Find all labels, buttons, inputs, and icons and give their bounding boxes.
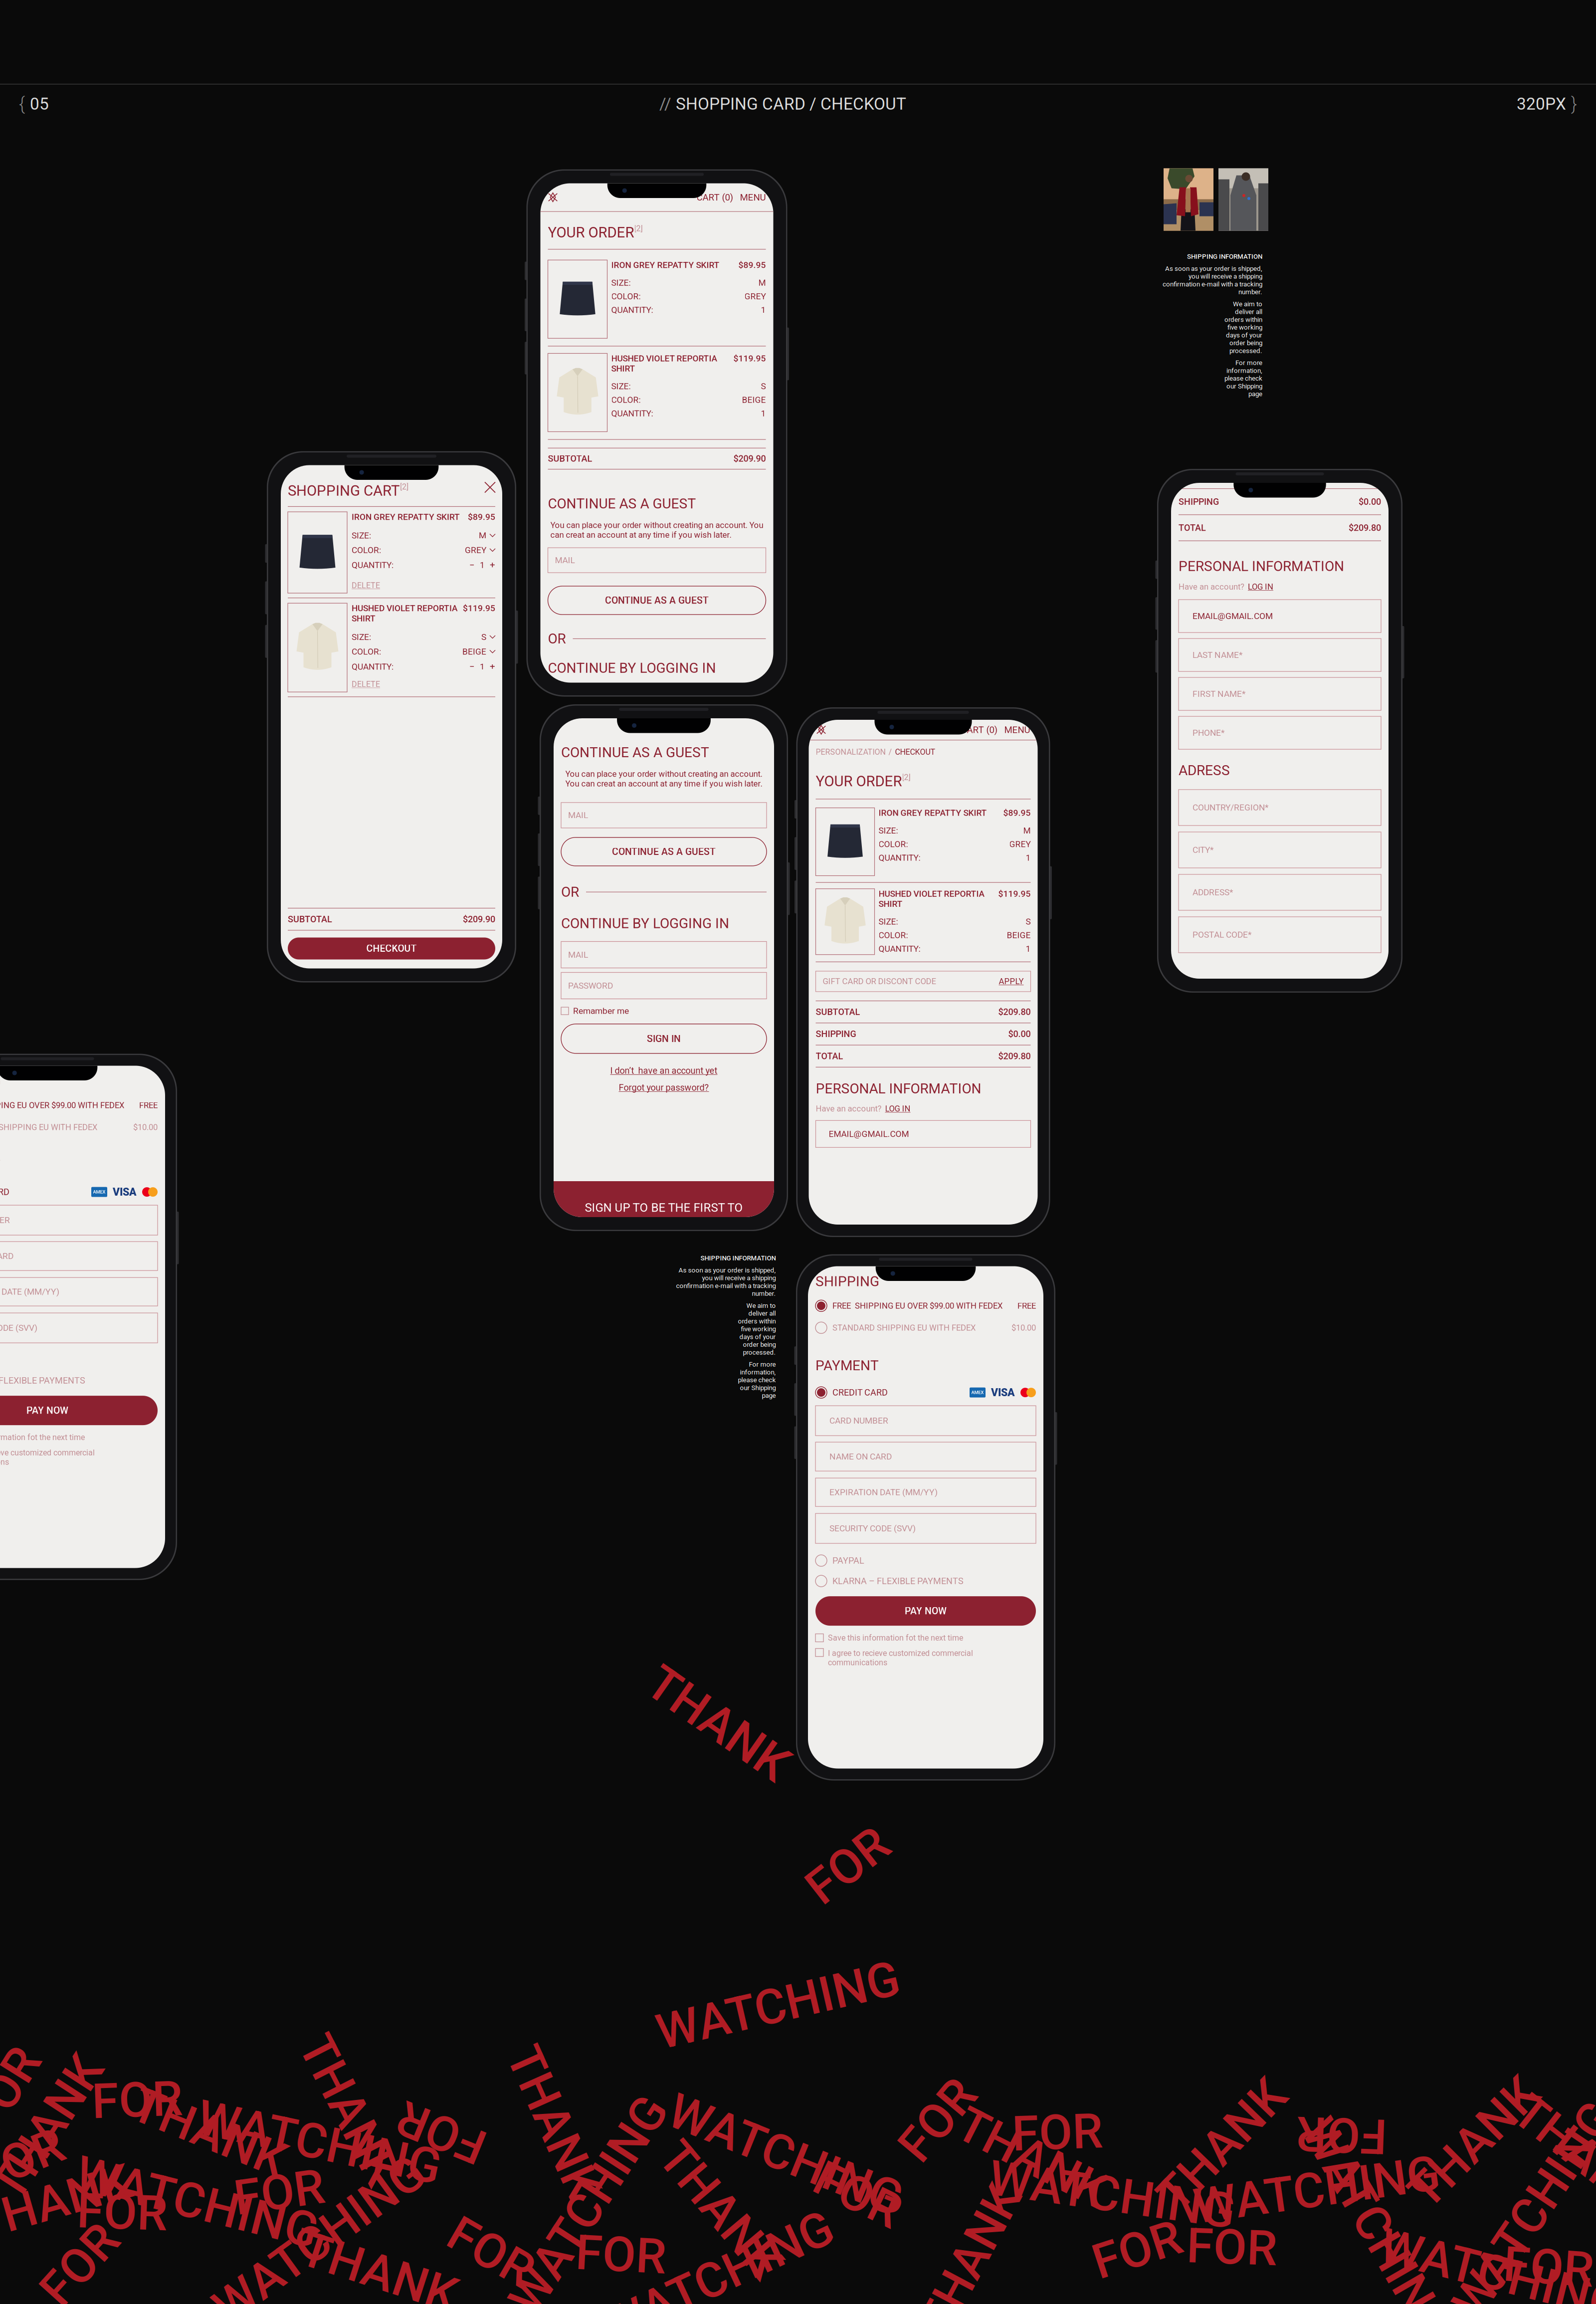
button[interactable]: FREE SHIPPING EU OVER $99.00 WITH FEDEX <box>0 1100 158 1111</box>
staticText: CREDIT CARD <box>832 1387 888 1398</box>
staticText: HUSHED VIOLET REPORTIA SHIRT <box>611 353 717 374</box>
button[interactable]: CART (0) <box>961 724 997 735</box>
staticText: THANK <box>637 1695 799 1752</box>
button[interactable]: CREDIT CARD <box>815 1386 1036 1399</box>
staticText: [2] <box>634 224 643 233</box>
button[interactable]: CONTINUE AS A GUEST <box>548 586 766 615</box>
staticText: } <box>1571 93 1577 114</box>
button[interactable]: Home <box>816 725 826 735</box>
staticText: I agree to recieve customized commercial… <box>0 1448 95 1467</box>
staticText: APPLY <box>999 977 1024 986</box>
staticText: FREE SHIPPING EU OVER $99.00 WITH FEDEX <box>0 1100 124 1110</box>
staticText: 1 <box>480 662 485 672</box>
staticText: Have an account? <box>1179 582 1244 592</box>
staticText: FOR <box>576 2226 666 2283</box>
button[interactable]: Close <box>485 482 495 493</box>
staticText: FREE <box>1017 1301 1036 1311</box>
staticText: COLOR: <box>879 930 908 940</box>
staticText: M <box>1023 825 1031 836</box>
staticText: STANDARD SHIPPING EU WITH FEDEX <box>0 1122 97 1132</box>
staticText: SHIPPING <box>1179 496 1219 507</box>
staticText: THANK <box>0 2174 133 2231</box>
button[interactable]: STANDARD SHIPPING EU WITH FEDEX <box>0 1121 158 1133</box>
button[interactable]: DELETE <box>352 680 495 689</box>
staticText: WATCHING <box>73 2174 321 2231</box>
button[interactable]: I agree to recieve customized commercial… <box>815 1649 1036 1667</box>
staticText: FOR <box>802 1837 893 1894</box>
button[interactable]: CART (0) <box>697 192 733 203</box>
staticText: FOR <box>396 2104 487 2161</box>
button[interactable]: Home <box>548 192 558 202</box>
button[interactable]: PAY NOW <box>815 1596 1036 1626</box>
button[interactable]: MENU <box>997 724 1030 735</box>
staticText: 1 <box>761 305 766 315</box>
staticText: FOR <box>1092 2221 1183 2278</box>
staticText: $209.80 <box>998 1051 1031 1061</box>
button[interactable]: CHECKOUT <box>288 938 495 959</box>
staticText: OR <box>548 630 566 647</box>
button[interactable]: SIGN IN <box>561 1024 767 1053</box>
staticText: + <box>490 560 495 571</box>
staticText: SIGN UP TO BE THE FIRST TO <box>585 1201 743 1215</box>
button[interactable]: MENU <box>733 192 766 203</box>
button[interactable]: SIZE: <box>352 632 495 642</box>
button[interactable]: APPLY <box>999 977 1024 986</box>
button[interactable]: FREE SHIPPING EU OVER $99.00 WITH FEDEX <box>815 1300 1036 1312</box>
staticText: FOR <box>1012 2104 1103 2161</box>
button[interactable]: I agree to recieve customized commercial… <box>0 1448 158 1467</box>
staticText: 320PX <box>1517 94 1566 114</box>
staticText: PERSONALIZATION <box>816 747 886 757</box>
staticText: WATCHING <box>1410 2181 1596 2238</box>
staticText: THANK <box>1393 2114 1555 2171</box>
button[interactable]: Save this information fot the next time <box>815 1633 1036 1643</box>
button[interactable]: Decrease quantity <box>469 661 475 672</box>
button[interactable]: CONTINUE AS A GUEST <box>561 837 767 866</box>
button[interactable]: PAY NOW <box>0 1396 158 1425</box>
staticText: AMEX <box>93 1189 105 1195</box>
button[interactable]: STANDARD SHIPPING EU WITH FEDEX <box>815 1322 1036 1333</box>
button[interactable]: Decrease quantity <box>469 560 475 571</box>
button[interactable]: KLARNA – FLEXIBLE PAYMENTS <box>0 1375 158 1386</box>
staticText: S <box>761 381 766 391</box>
staticText: // <box>659 94 671 114</box>
staticText: SHOPPING CARD / CHECKOUT <box>676 94 906 114</box>
staticText: GREY <box>1009 839 1031 849</box>
button[interactable]: PAYPAL <box>815 1555 1036 1566</box>
staticText: PHONE* <box>1193 728 1224 738</box>
staticText: SIGN IN <box>647 1033 681 1044</box>
button[interactable]: COLOR: <box>352 647 495 657</box>
button[interactable]: CREDIT CARD <box>0 1186 158 1198</box>
staticText: EMAIL@GMAIL.COM <box>829 1129 909 1139</box>
staticText: $209.90 <box>463 914 495 924</box>
button[interactable]: Remamber me <box>561 1006 767 1016</box>
staticText: SIZE: <box>352 632 371 642</box>
staticText: SUBTOTAL <box>548 453 592 464</box>
button[interactable]: KLARNA – FLEXIBLE PAYMENTS <box>815 1575 1036 1587</box>
staticText: CARD NUMBER <box>0 1215 10 1225</box>
staticText: SECURITY CODE (SVV) <box>829 1523 916 1533</box>
staticText: − <box>469 661 475 672</box>
staticText: QUANTITY: <box>611 305 653 315</box>
button[interactable]: LOG IN <box>1248 582 1273 592</box>
staticText: CART (0) <box>961 724 997 735</box>
staticText: WATCHING <box>662 2126 909 2183</box>
staticText: EXPIRATION DATE (MM/YY) <box>829 1487 938 1497</box>
button[interactable]: Save this information fot the next time <box>0 1433 158 1442</box>
button[interactable]: Increase quantity <box>490 560 495 571</box>
button[interactable]: COLOR: <box>352 545 495 555</box>
staticText: NAME ON CARD <box>0 1251 13 1261</box>
button[interactable]: LOG IN <box>885 1104 910 1113</box>
button[interactable]: I don’t have an account yet <box>610 1065 717 1076</box>
button[interactable]: Forgot your password? <box>619 1082 709 1093</box>
staticText: THANK <box>952 2129 1113 2186</box>
button[interactable]: DELETE <box>352 581 495 590</box>
staticText: CONTINUE AS A GUEST <box>561 744 709 761</box>
button[interactable]: SIZE: <box>352 530 495 541</box>
staticText: SIZE: <box>879 825 898 836</box>
staticText: As soon as your order is shipped, you wi… <box>676 1266 776 1297</box>
staticText: WATCHING <box>465 2176 712 2233</box>
staticText: LAST NAME* <box>1193 650 1242 660</box>
staticText: GREY <box>465 545 486 555</box>
button[interactable]: Increase quantity <box>490 661 495 672</box>
